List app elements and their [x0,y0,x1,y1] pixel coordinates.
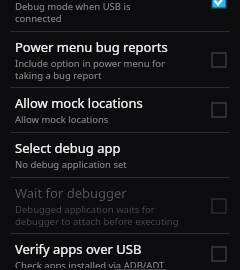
button[interactable]: Unchecked checkbox [206,193,232,219]
button[interactable]: Power menu bug reports [0,32,240,87]
staticText: Wait for debugger [15,184,127,202]
staticText: Check apps installed via ADB/ADT for har… [15,259,165,268]
button[interactable]: Checked checkbox [206,0,232,14]
button[interactable]: Select debug app [0,133,240,177]
staticText: Include option in power menu for taking … [15,57,166,82]
staticText: Select debug app [15,139,121,157]
button[interactable]: Debug mode when USB is connected [0,0,240,26]
staticText: Allow mock locations [15,113,109,126]
staticText: Debugged application waits for debugger … [15,203,179,228]
button[interactable]: Allow mock locations [0,88,240,132]
button[interactable]: Verify apps over USB [0,234,240,270]
staticText: Allow mock locations [15,94,143,112]
staticText: Debug mode when USB is connected [15,0,131,25]
button[interactable]: Wait for debugger [0,178,240,233]
button[interactable]: Unchecked checkbox [206,241,232,267]
button[interactable]: Unchecked checkbox [206,47,232,73]
staticText: No debug application set [15,158,127,171]
staticText: Power menu bug reports [15,38,168,56]
button[interactable]: Unchecked checkbox [206,97,232,123]
staticText: Verify apps over USB [15,240,142,258]
